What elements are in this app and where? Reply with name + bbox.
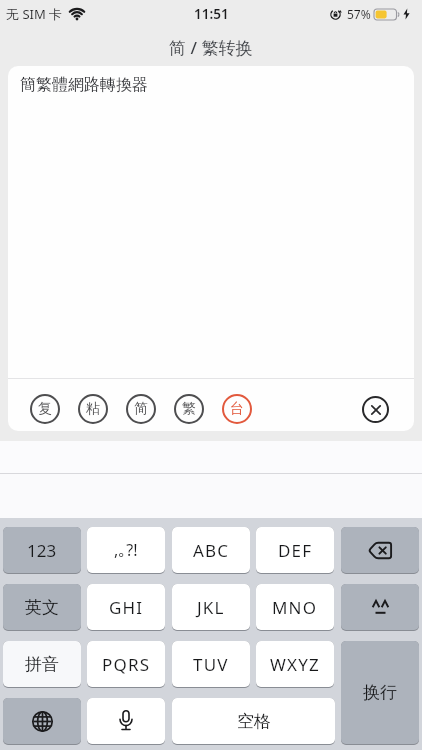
button[interactable]: 简 bbox=[126, 394, 156, 424]
staticText: 复 bbox=[38, 400, 52, 418]
button[interactable]: GHI bbox=[87, 584, 165, 630]
staticText: GHI bbox=[109, 596, 144, 619]
staticText: 11:51 bbox=[194, 5, 229, 23]
button[interactable] bbox=[341, 584, 419, 630]
button[interactable]: PQRS bbox=[87, 641, 165, 687]
button[interactable]: MNO bbox=[256, 584, 334, 630]
button[interactable]: 拼音 bbox=[3, 641, 81, 687]
button[interactable] bbox=[341, 527, 419, 573]
staticText: 57% bbox=[347, 6, 371, 22]
button[interactable]: 英文 bbox=[3, 584, 81, 630]
button[interactable]: 空格 bbox=[172, 698, 335, 744]
staticText: 空格 bbox=[237, 711, 271, 732]
button[interactable]: TUV bbox=[172, 641, 250, 687]
staticText: 拼音 bbox=[25, 654, 59, 675]
staticText: 台 bbox=[230, 400, 244, 418]
staticText: 123 bbox=[27, 539, 57, 562]
button[interactable]: 粘 bbox=[78, 394, 108, 424]
button[interactable]: ,｡?! bbox=[87, 527, 165, 573]
button[interactable] bbox=[87, 698, 165, 744]
staticText: ,｡?! bbox=[114, 539, 138, 561]
staticText: 换行 bbox=[363, 682, 397, 703]
button[interactable]: 123 bbox=[3, 527, 81, 573]
button[interactable]: DEF bbox=[256, 527, 334, 573]
staticText: TUV bbox=[193, 653, 229, 676]
staticText: 粘 bbox=[86, 400, 100, 418]
staticText: DEF bbox=[278, 539, 313, 562]
button[interactable]: 台 bbox=[222, 394, 252, 424]
staticText: 繁 bbox=[182, 400, 196, 418]
button[interactable]: 复 bbox=[30, 394, 60, 424]
button[interactable]: 繁 bbox=[174, 394, 204, 424]
button[interactable]: WXYZ bbox=[256, 641, 334, 687]
staticText: PQRS bbox=[102, 653, 151, 676]
staticText: JKL bbox=[197, 596, 225, 619]
button[interactable] bbox=[362, 396, 389, 423]
staticText: 簡繁體網路轉換器 bbox=[20, 75, 148, 95]
staticText: 简 / 繁转换 bbox=[169, 36, 253, 59]
button[interactable]: JKL bbox=[172, 584, 250, 630]
staticText: 英文 bbox=[25, 597, 59, 618]
staticText: WXYZ bbox=[270, 653, 320, 676]
button[interactable] bbox=[3, 698, 81, 744]
button[interactable]: 换行 bbox=[341, 641, 419, 744]
staticText: 简 bbox=[134, 400, 148, 418]
staticText: ABC bbox=[193, 539, 230, 562]
button[interactable]: ABC bbox=[172, 527, 250, 573]
staticText: MNO bbox=[272, 596, 318, 619]
staticText: 无 SIM 卡 bbox=[6, 5, 63, 23]
